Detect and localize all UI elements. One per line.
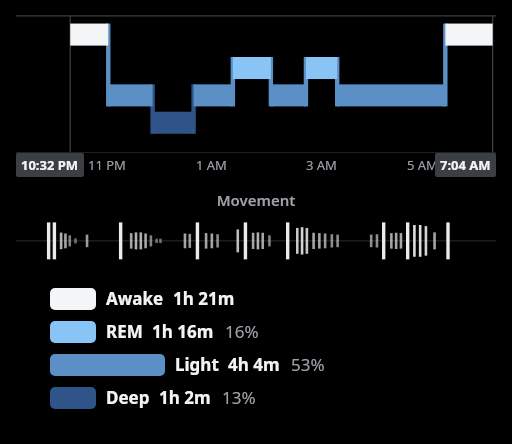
button[interactable]: Sleep stages hypnogram (16, 0, 496, 152)
staticText: 4h 4m (228, 353, 280, 376)
button[interactable]: REM (16, 315, 496, 348)
staticText: 16% (225, 320, 259, 343)
staticText: 1h 2m (159, 386, 211, 409)
staticText: Light (175, 353, 219, 376)
staticText: Awake (106, 287, 164, 310)
button[interactable]: Light (16, 348, 496, 381)
button[interactable]: 10:32 PM (16, 153, 84, 177)
button[interactable]: Deep (16, 381, 496, 414)
staticText: Deep (106, 386, 150, 409)
staticText: 13% (222, 386, 256, 409)
staticText: REM (106, 320, 143, 343)
button[interactable]: Awake (16, 282, 496, 315)
staticText: 1h 16m (152, 320, 214, 343)
button[interactable]: Movement during sleep (16, 218, 496, 262)
staticText: 7:04 AM (440, 156, 491, 174)
staticText: 3 AM (306, 156, 337, 174)
staticText: 53% (291, 353, 325, 376)
staticText: 1 AM (196, 156, 227, 174)
staticText: 5 AM (407, 156, 438, 174)
button[interactable]: 7:04 AM (435, 153, 496, 177)
staticText: 11 PM (88, 156, 126, 174)
staticText: 1h 21m (173, 287, 235, 310)
staticText: 10:32 PM (21, 156, 79, 174)
staticText: Movement (16, 190, 496, 210)
